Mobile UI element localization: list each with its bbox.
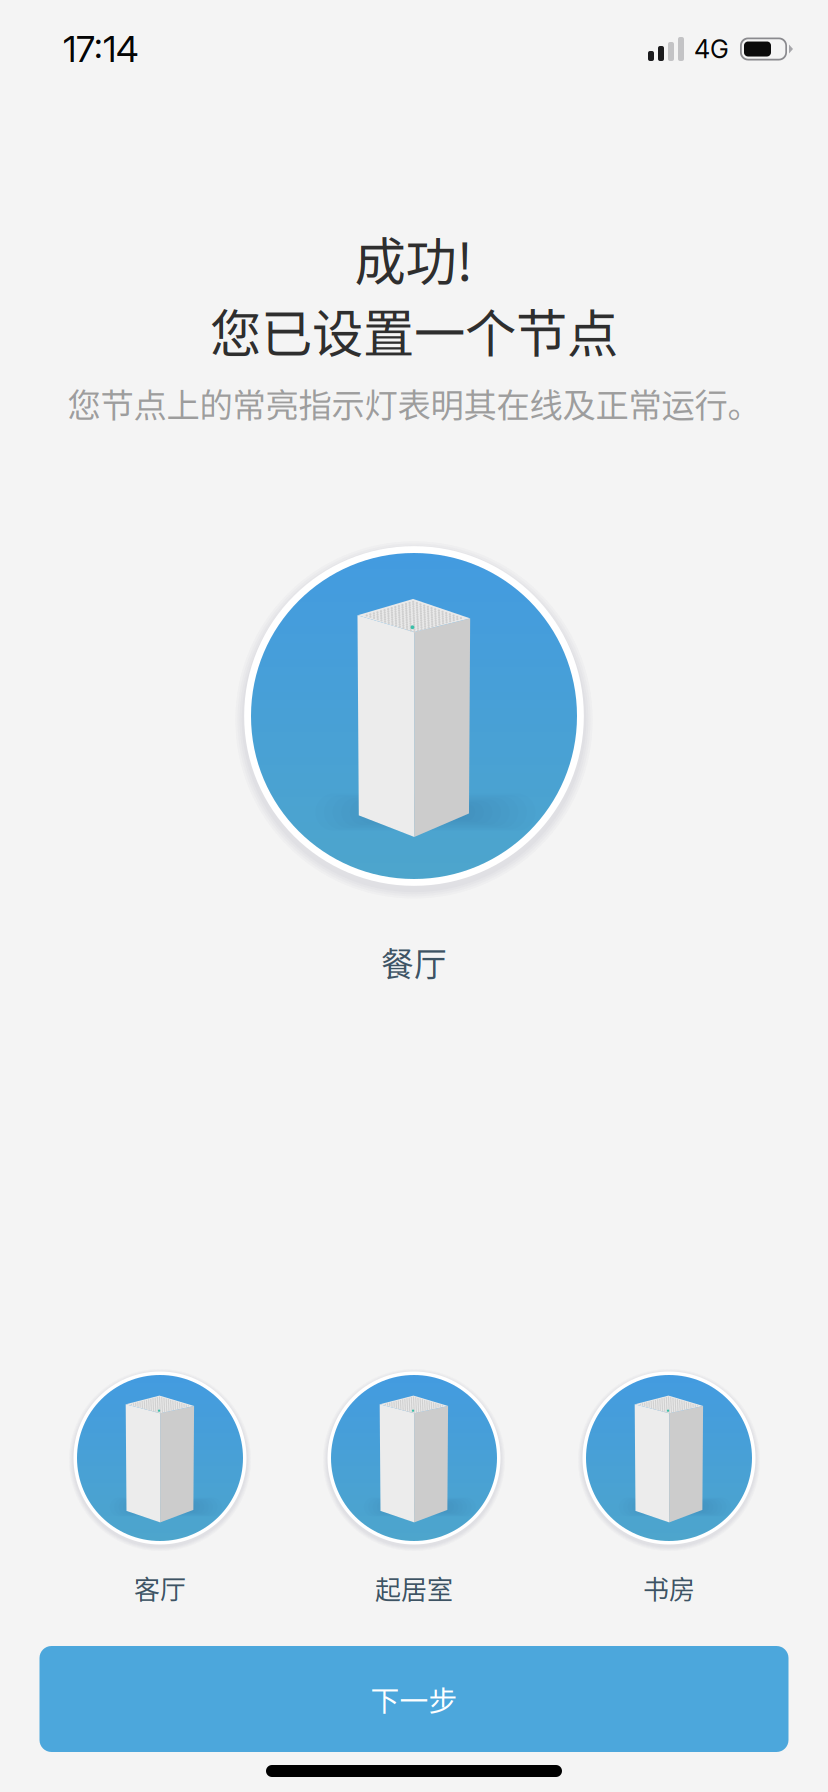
staticText: 成功! [354,221,473,295]
button[interactable]: 餐厅 [0,0,828,1792]
staticText: 您已设置一个节点 [210,293,618,367]
button[interactable]: 下一步 [39,1646,788,1752]
staticText: 客厅 [134,1569,186,1607]
staticText: 您节点上的常亮指示灯表明其在线及正常运行。 [67,379,760,427]
staticText: 4G [694,34,729,64]
staticText: 17:14 [63,27,139,71]
button[interactable]: 书房 [0,0,828,1792]
button[interactable]: 客厅 [0,0,828,1792]
button[interactable]: 起居室 [0,0,828,1792]
staticText: 起居室 [375,1569,453,1607]
staticText: 书房 [643,1569,695,1607]
staticText: 餐厅 [381,938,447,986]
staticText: 下一步 [370,1678,457,1720]
